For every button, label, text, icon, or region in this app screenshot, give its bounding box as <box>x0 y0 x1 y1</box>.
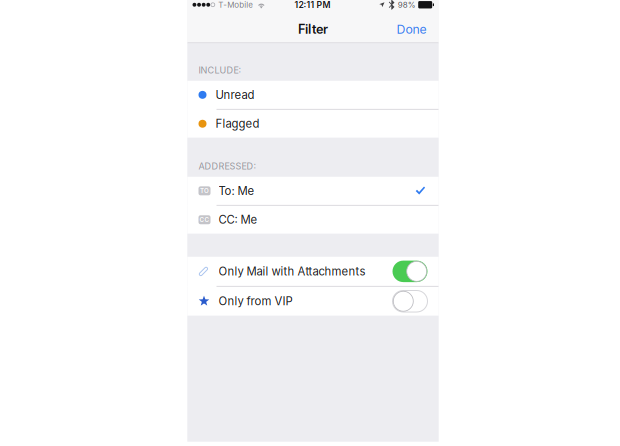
staticText: Flagged <box>215 117 259 131</box>
staticText: Only from VIP <box>218 294 292 308</box>
staticText: 12:11 PM <box>294 0 330 10</box>
staticText: CC: Me <box>218 213 257 227</box>
staticText: Filter <box>298 22 328 37</box>
button[interactable]: Unread <box>187 81 438 109</box>
staticText: ADDRESSED: <box>198 161 256 172</box>
staticText: CC <box>199 216 209 223</box>
staticText: Only Mail with Attachments <box>218 264 365 278</box>
staticText: 98% <box>398 0 416 10</box>
staticText: T-Mobile <box>218 0 253 10</box>
staticText: Unread <box>215 88 254 102</box>
button[interactable]: Only from VIP <box>392 290 427 312</box>
button[interactable]: Flagged <box>187 110 438 138</box>
staticText: TO <box>200 187 209 194</box>
staticText: Done <box>396 22 426 37</box>
button[interactable]: Only Mail with Attachments <box>392 261 427 282</box>
button[interactable]: CC <box>187 206 438 234</box>
button[interactable]: TO <box>187 177 438 205</box>
staticText: INCLUDE: <box>198 65 241 76</box>
staticText: To: Me <box>218 184 254 198</box>
button[interactable]: Done <box>382 16 438 42</box>
